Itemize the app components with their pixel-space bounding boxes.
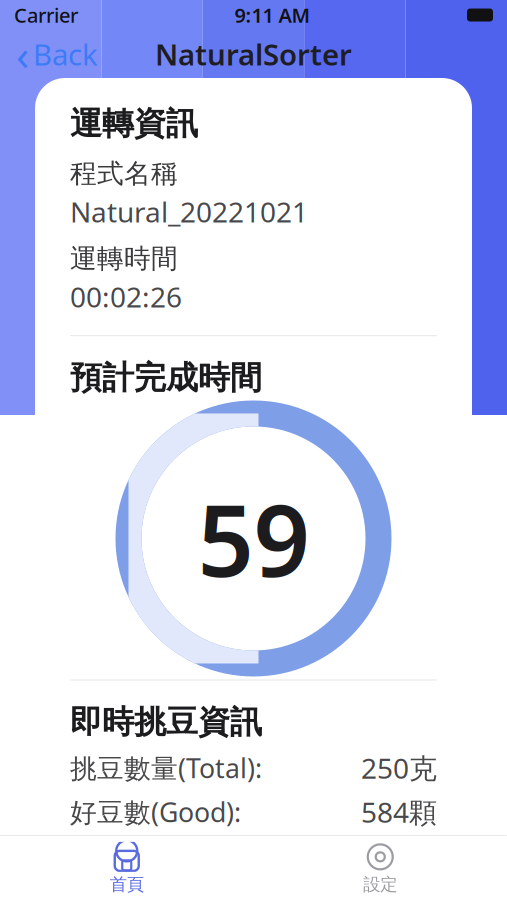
- staticText: 瑕疵豆(NG):: [70, 838, 213, 873]
- button[interactable]: ‹: [0, 32, 114, 76]
- staticText: 即時挑豆資訊: [70, 702, 262, 742]
- staticText: 00:02:26: [70, 278, 182, 315]
- staticText: 預計完成時間: [70, 358, 262, 397]
- button[interactable]: 首頁: [0, 836, 253, 900]
- staticText: 挑豆數量(Total):: [70, 750, 262, 785]
- staticText: 59: [197, 473, 309, 604]
- staticText: Back: [33, 34, 98, 73]
- staticText: 運轉資訊: [70, 104, 198, 143]
- staticText: 設定: [363, 874, 397, 895]
- staticText: Carrier: [14, 2, 78, 28]
- staticText: 584顆: [361, 793, 437, 830]
- staticText: 146顆: [361, 837, 437, 874]
- staticText: 程式名稱: [70, 157, 178, 190]
- staticText: 9:11 AM: [234, 2, 310, 28]
- staticText: 250克: [361, 749, 437, 786]
- staticText: ‹: [16, 26, 29, 82]
- button[interactable]: 設定: [253, 836, 507, 900]
- staticText: 運轉時間: [70, 242, 178, 275]
- staticText: 首頁: [110, 874, 144, 895]
- staticText: NaturalSorter: [155, 34, 352, 73]
- staticText: Natural_20221021: [70, 193, 308, 230]
- staticText: 好豆數(Good):: [70, 794, 241, 829]
